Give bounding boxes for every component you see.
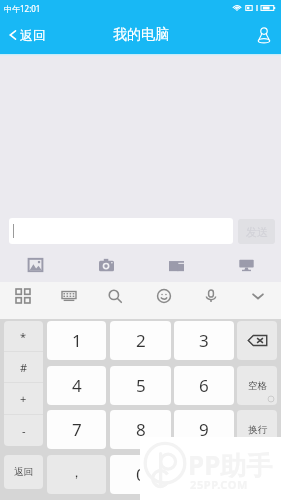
staticText: 2 — [136, 329, 146, 352]
button[interactable]: Keyboard — [55, 282, 83, 310]
button[interactable]: 0 — [110, 455, 171, 494]
button[interactable]: + — [4, 383, 43, 414]
button[interactable]: 4 — [47, 366, 106, 405]
button[interactable]: * — [4, 321, 43, 351]
button[interactable]: Voice input — [197, 282, 225, 310]
button[interactable]: 6 — [174, 366, 234, 405]
staticText: 空格 — [248, 380, 267, 392]
staticText: ， — [70, 464, 83, 480]
button[interactable]: 8 — [110, 410, 171, 449]
button[interactable]: ， — [47, 455, 106, 494]
button[interactable]: 换行 — [237, 410, 277, 449]
button[interactable] — [237, 321, 277, 360]
button[interactable]: Photos — [0, 252, 71, 278]
button[interactable]: Hide keyboard — [244, 282, 272, 310]
button[interactable]: Emoji — [150, 282, 178, 310]
button[interactable]: 2 — [110, 321, 171, 360]
staticText: 4 — [72, 374, 82, 397]
button[interactable]: 返回 — [4, 455, 43, 489]
button[interactable]: 返回 — [0, 16, 56, 54]
button[interactable]: 7 — [47, 410, 106, 449]
button[interactable]: 发送 — [238, 219, 275, 244]
staticText: * — [20, 329, 27, 344]
staticText: 25PP.COM — [190, 477, 249, 492]
button[interactable]: Computer — [211, 252, 281, 278]
staticText: # — [20, 360, 28, 375]
button[interactable]: Camera — [71, 252, 141, 278]
button[interactable]: Files — [141, 252, 211, 278]
button[interactable]: Contacts — [247, 16, 281, 54]
button[interactable]: 9 — [174, 410, 234, 449]
staticText: 中午12:01 — [4, 3, 41, 14]
button[interactable]: - — [4, 415, 43, 446]
button[interactable]: 5 — [110, 366, 171, 405]
staticText: 7 — [72, 418, 82, 441]
staticText: + — [20, 391, 27, 406]
staticText: 6 — [199, 374, 209, 397]
staticText: 1 — [72, 329, 82, 352]
staticText: PP助手 — [188, 447, 273, 483]
button[interactable]: 1 — [47, 321, 106, 360]
staticText: 0 — [136, 463, 146, 486]
staticText: 确定 — [248, 469, 267, 481]
staticText: - — [22, 423, 26, 438]
staticText: 9 — [199, 418, 209, 441]
staticText: 。 — [198, 467, 211, 483]
staticText: 返回 — [14, 466, 33, 478]
button[interactable]: Apps — [9, 282, 37, 310]
staticText: 5 — [136, 374, 146, 397]
staticText: 我的电脑 — [113, 26, 169, 44]
button[interactable]: # — [4, 352, 43, 382]
staticText: 返回 — [20, 27, 46, 43]
button[interactable]: 确定 — [237, 455, 277, 494]
button[interactable] — [9, 218, 233, 244]
button[interactable]: Search — [101, 282, 129, 310]
button[interactable]: 。 — [174, 455, 234, 494]
button[interactable]: 空格 — [237, 366, 277, 405]
staticText: 3 — [199, 329, 209, 352]
staticText: 换行 — [248, 424, 267, 436]
staticText: 发送 — [246, 225, 268, 239]
staticText: 8 — [136, 418, 146, 441]
button[interactable]: 3 — [174, 321, 234, 360]
